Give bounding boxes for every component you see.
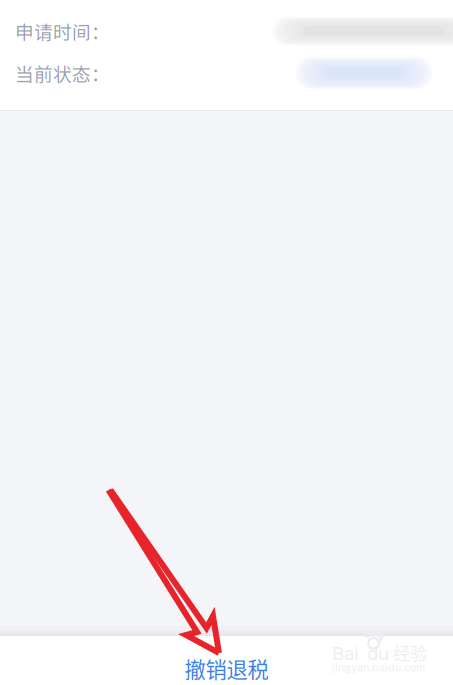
staticText: 当前状态： [15, 59, 110, 86]
staticText: 撤销退税 [184, 653, 268, 684]
staticText: du [367, 642, 389, 665]
staticText: Bai [332, 642, 359, 665]
staticText: 申请时间： [15, 17, 110, 44]
staticText: 经验 [393, 640, 427, 665]
button[interactable]: 撤销退税 [0, 636, 453, 685]
staticText: jingyan.baidu.com [332, 661, 425, 674]
